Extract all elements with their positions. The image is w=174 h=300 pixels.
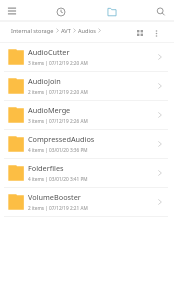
button[interactable]: CompressedAudios (0, 130, 174, 158)
staticText: AudioCutter (28, 47, 70, 57)
staticText: VolumeBooster (28, 192, 81, 202)
staticText: Audios (78, 27, 96, 35)
staticText: 4 items | 03/01/20 3:41 PM (28, 176, 88, 182)
button[interactable]: Menu (6, 5, 18, 17)
button[interactable]: Folderfiles (0, 159, 174, 187)
button[interactable]: VolumeBooster (0, 188, 174, 216)
staticText: AudioJoin (28, 76, 61, 86)
button[interactable]: Recent (54, 5, 68, 19)
staticText: 3 items | 07/12/19 2:20 AM (28, 60, 88, 66)
staticText: AudioMerge (28, 105, 71, 115)
staticText: 2 items | 07/12/19 2:21 AM (28, 205, 88, 211)
staticText: Internal storage (11, 27, 54, 35)
button[interactable]: AudioCutter (0, 43, 174, 71)
staticText: 2 items | 07/12/19 2:20 AM (28, 89, 88, 95)
button[interactable]: Grid view (133, 26, 146, 39)
button[interactable]: More options (149, 26, 163, 40)
button[interactable]: AudioJoin (0, 72, 174, 100)
staticText: Folderfiles (28, 163, 64, 173)
button[interactable]: Audios (78, 27, 96, 35)
button[interactable]: AVT (61, 27, 71, 35)
staticText: 4 items | 03/01/20 3:36 PM (28, 147, 88, 153)
button[interactable]: AudioMerge (0, 101, 174, 129)
button[interactable]: Search (154, 5, 168, 19)
staticText: CompressedAudios (28, 134, 95, 144)
button[interactable]: Internal storage (105, 5, 119, 19)
button[interactable]: Internal storage (11, 27, 54, 35)
staticText: AVT (61, 27, 71, 35)
staticText: 3 items | 07/12/19 2:26 AM (28, 118, 88, 124)
